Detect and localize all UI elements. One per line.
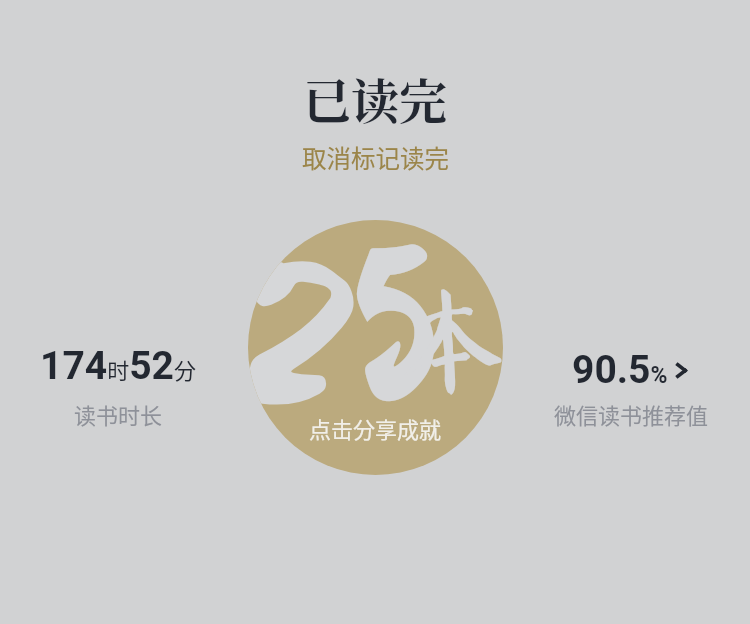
staticText: 174时52分 [40,343,196,389]
staticText: 已读完 [303,64,448,133]
staticText: 5 [342,223,447,438]
staticText: 读书时长 [74,398,163,430]
button[interactable]: 2 [248,220,503,475]
staticText: 90.5% [572,347,668,393]
staticText: 本 [393,277,503,401]
staticText: 2 [248,229,361,453]
staticText: 微信读书推荐值 [554,398,709,430]
staticText: 点击分享成就 [309,412,442,444]
staticText: 取消标记读完 [302,140,449,175]
button[interactable]: 取消标记读完 [292,137,459,178]
button[interactable]: 90.5% [525,347,737,430]
other: More [673,362,690,379]
